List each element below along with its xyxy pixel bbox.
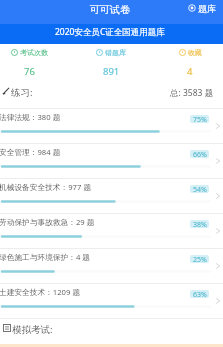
button[interactable]: 法律法规：380 题 (0, 108, 223, 143)
staticText: 错题库 (105, 48, 126, 57)
button[interactable]: 题库 (188, 1, 216, 15)
staticText: 模拟考试: (12, 323, 53, 336)
staticText: 891 (103, 65, 120, 78)
button[interactable]: 收藏 (154, 44, 223, 83)
button[interactable]: 安全管理：984 题 (0, 143, 223, 178)
staticText: 66% (193, 150, 207, 158)
staticText: 题库 (198, 3, 216, 14)
button[interactable]: 练习: (0, 83, 223, 108)
staticText: 总: 3583 题 (170, 87, 214, 99)
button[interactable]: 错题库 (75, 44, 147, 83)
staticText: 38% (193, 220, 207, 228)
staticText: 考试次数 (20, 48, 48, 57)
staticText: 63% (193, 290, 207, 298)
staticText: 练习: (11, 86, 33, 99)
button[interactable]: 绿色施工与环境保护：4 题 (0, 248, 223, 283)
staticText: 土建安全技术：1209 题 (0, 287, 81, 298)
staticText: 25% (193, 255, 207, 263)
button[interactable]: 劳动保护与事故救急：29 题 (0, 213, 223, 248)
button[interactable]: 机械设备安全技术：977 题 (0, 178, 223, 213)
staticText: 收藏 (188, 48, 202, 57)
staticText: 劳动保护与事故救急：29 题 (0, 217, 95, 228)
staticText: 54% (193, 185, 207, 193)
button[interactable]: 模拟考试: (0, 318, 223, 343)
staticText: 可可试卷 (90, 3, 130, 16)
staticText: 76 (24, 65, 35, 78)
staticText: 机械设备安全技术：977 题 (0, 182, 92, 193)
staticText: 安全管理：984 题 (0, 147, 61, 158)
staticText: 2020安全员C证全国通用题库 (55, 26, 165, 38)
staticText: 4 (187, 65, 193, 78)
staticText: 75% (193, 115, 207, 123)
button[interactable]: 土建安全技术：1209 题 (0, 283, 223, 318)
button[interactable]: 考试次数 (0, 44, 65, 83)
staticText: 绿色施工与环境保护：4 题 (0, 252, 90, 263)
staticText: 法律法规：380 题 (0, 112, 61, 123)
